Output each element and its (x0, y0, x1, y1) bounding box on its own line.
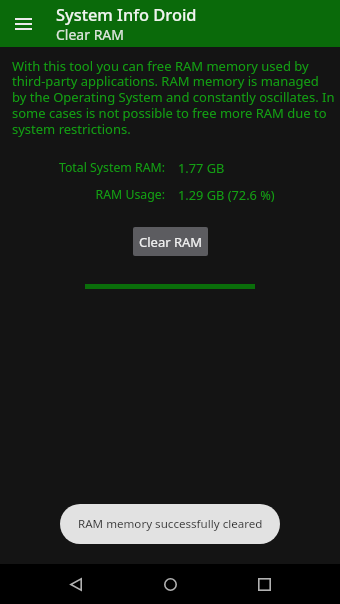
staticText: 1.77 GB (178, 159, 225, 176)
staticText: Clear RAM (56, 25, 124, 44)
staticText: System Info Droid (56, 3, 197, 25)
button[interactable]: RAM memory successfully cleared (60, 504, 280, 544)
button[interactable]: Open navigation drawer (0, 0, 46, 47)
staticText: RAM Usage: (95, 186, 165, 203)
button[interactable]: Home (140, 564, 200, 604)
staticText: RAM memory successfully cleared (78, 516, 263, 532)
staticText: Clear RAM (139, 233, 203, 251)
button[interactable]: Back (46, 564, 106, 604)
button[interactable]: Clear RAM (133, 227, 208, 256)
staticText: Total System RAM: (58, 159, 165, 176)
staticText: 1.29 GB (72.6 %) (178, 186, 275, 203)
staticText: With this tool you can free RAM memory u… (12, 57, 336, 138)
button[interactable]: Recent apps (234, 564, 294, 604)
